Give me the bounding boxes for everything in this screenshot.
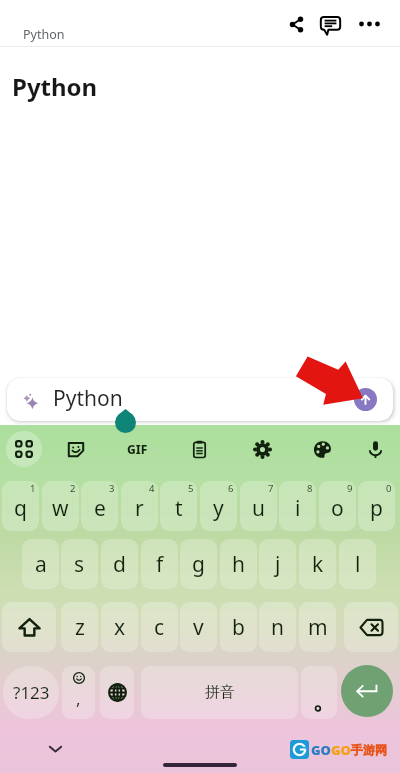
staticText: k — [312, 550, 324, 579]
button[interactable]: y — [200, 481, 237, 531]
staticText: GIF — [127, 441, 148, 457]
button[interactable]: e — [81, 481, 118, 531]
staticText: Python — [12, 70, 98, 103]
staticText: v — [193, 613, 204, 642]
staticText: , — [76, 687, 81, 710]
staticText: r — [135, 494, 144, 523]
button[interactable]: x — [101, 602, 138, 652]
staticText: y — [213, 494, 224, 523]
button[interactable]: a — [22, 539, 59, 589]
staticText: s — [74, 550, 85, 579]
button[interactable]: n — [259, 602, 296, 652]
button[interactable]: t — [160, 481, 197, 531]
staticText: u — [252, 494, 265, 523]
button[interactable]: m — [299, 602, 336, 652]
staticText: GO — [311, 741, 331, 759]
staticText: h — [232, 550, 245, 579]
button[interactable]: b — [220, 602, 257, 652]
button[interactable]: Stickers — [58, 431, 94, 467]
staticText: ?123 — [13, 681, 50, 704]
staticText: 3 — [109, 482, 115, 495]
button[interactable]: u — [240, 481, 277, 531]
button[interactable]: s — [61, 539, 98, 589]
staticText: p — [370, 494, 383, 523]
staticText: 5 — [188, 482, 194, 495]
staticText: b — [232, 613, 245, 642]
button[interactable]: Clipboard — [181, 431, 217, 467]
button[interactable]: o — [319, 481, 356, 531]
staticText: q — [14, 494, 27, 523]
staticText: Python — [23, 26, 65, 43]
button[interactable]: f — [141, 539, 178, 589]
button[interactable]: Comments — [313, 8, 347, 42]
staticText: e — [94, 494, 106, 523]
button[interactable]: More options — [352, 7, 386, 41]
staticText: x — [114, 613, 126, 642]
staticText: c — [154, 613, 165, 642]
staticText: 1 — [30, 482, 36, 495]
staticText: w — [52, 494, 69, 523]
button[interactable]: p — [358, 481, 395, 531]
staticText: n — [271, 613, 284, 642]
staticText: 拼音 — [205, 683, 235, 702]
staticText: i — [295, 494, 301, 523]
button[interactable]: k — [299, 539, 336, 589]
button[interactable]: Themes — [304, 431, 340, 467]
staticText: m — [308, 613, 328, 642]
staticText: d — [113, 550, 126, 579]
button[interactable]: , — [62, 666, 95, 719]
staticText: f — [156, 550, 164, 579]
staticText: 4 — [149, 482, 155, 495]
staticText: 手游网 — [351, 742, 387, 757]
staticText: 8 — [307, 482, 313, 495]
button[interactable]: h — [220, 539, 257, 589]
staticText: l — [355, 550, 361, 579]
staticText: Python — [53, 384, 123, 413]
button[interactable] — [301, 666, 337, 719]
staticText: z — [75, 613, 85, 642]
staticText: 7 — [268, 482, 274, 495]
button[interactable]: c — [141, 602, 178, 652]
button[interactable]: Hide keyboard — [38, 735, 72, 761]
button[interactable]: ?123 — [3, 666, 59, 719]
button[interactable]: Voice input — [357, 431, 393, 467]
staticText: 2 — [70, 482, 76, 495]
button[interactable]: 拼音 — [141, 666, 298, 719]
staticText: t — [175, 494, 183, 523]
staticText: g — [192, 550, 205, 579]
button[interactable]: Python — [7, 378, 393, 421]
button[interactable]: v — [180, 602, 217, 652]
button[interactable]: z — [61, 602, 98, 652]
button[interactable] — [2, 602, 56, 652]
staticText: 9 — [347, 482, 353, 495]
staticText: a — [35, 550, 47, 579]
staticText: o — [331, 494, 344, 523]
button[interactable] — [100, 666, 134, 719]
button[interactable]: l — [339, 539, 376, 589]
staticText: GO — [331, 741, 351, 759]
staticText: j — [275, 550, 281, 579]
button[interactable] — [344, 602, 398, 652]
button[interactable]: r — [121, 481, 158, 531]
staticText: 0 — [386, 482, 392, 495]
button[interactable]: i — [279, 481, 316, 531]
button[interactable]: Apps — [6, 431, 42, 467]
staticText: 6 — [228, 482, 234, 495]
button[interactable]: g — [180, 539, 217, 589]
button[interactable]: Send — [354, 388, 377, 411]
button[interactable]: q — [2, 481, 39, 531]
button[interactable]: w — [42, 481, 79, 531]
button[interactable]: Settings — [244, 431, 280, 467]
button[interactable]: d — [101, 539, 138, 589]
button[interactable]: j — [259, 539, 296, 589]
button[interactable]: Share — [279, 7, 313, 41]
button[interactable]: GIF — [119, 431, 155, 467]
button[interactable]: Enter — [341, 665, 393, 717]
